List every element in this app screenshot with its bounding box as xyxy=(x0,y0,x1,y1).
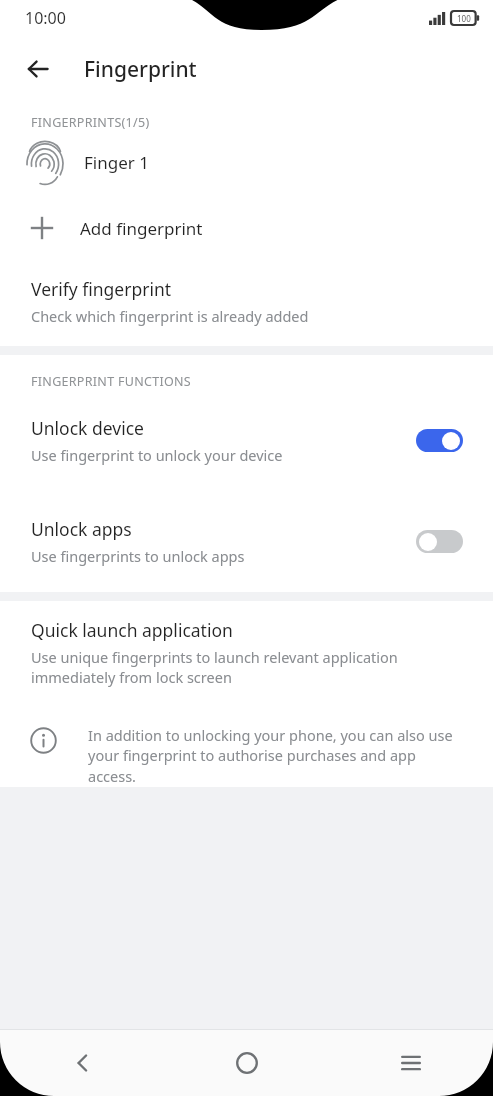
staticText: FINGERPRINT FUNCTIONS xyxy=(31,373,191,390)
button[interactable]: Unlock device xyxy=(0,390,493,491)
button[interactable]: Quick launch application xyxy=(0,601,493,703)
staticText: Verify fingerprint xyxy=(31,277,172,301)
button[interactable]: Back xyxy=(0,1030,165,1096)
staticText: Unlock apps xyxy=(31,517,132,541)
button[interactable]: Finger 1 xyxy=(0,131,493,193)
button[interactable]: Add fingerprint xyxy=(0,193,493,263)
staticText: Check which fingerprint is already added xyxy=(31,306,309,326)
staticText: FINGERPRINTS(1/5) xyxy=(31,114,150,131)
staticText: In addition to unlocking your phone, you… xyxy=(88,725,463,787)
staticText: 10:00 xyxy=(25,7,66,29)
staticText: Finger 1 xyxy=(84,151,149,174)
staticText: Use fingerprints to unlock apps xyxy=(31,546,245,566)
button[interactable]: Unlock device xyxy=(416,429,463,452)
button[interactable]: Unlock apps xyxy=(0,491,493,592)
button[interactable]: Home xyxy=(165,1030,329,1096)
staticText: Add fingerprint xyxy=(80,217,203,240)
button[interactable]: Recents xyxy=(329,1030,493,1096)
staticText: Fingerprint xyxy=(84,55,197,84)
button[interactable]: Unlock apps xyxy=(416,530,463,553)
button[interactable]: Verify fingerprint xyxy=(0,263,493,346)
button[interactable]: Back xyxy=(14,45,62,93)
staticText: Use fingerprint to unlock your device xyxy=(31,445,283,465)
staticText: Use unique fingerprints to launch releva… xyxy=(31,647,465,687)
staticText: 100 xyxy=(457,13,471,24)
staticText: Unlock device xyxy=(31,416,144,440)
staticText: Quick launch application xyxy=(31,618,233,642)
